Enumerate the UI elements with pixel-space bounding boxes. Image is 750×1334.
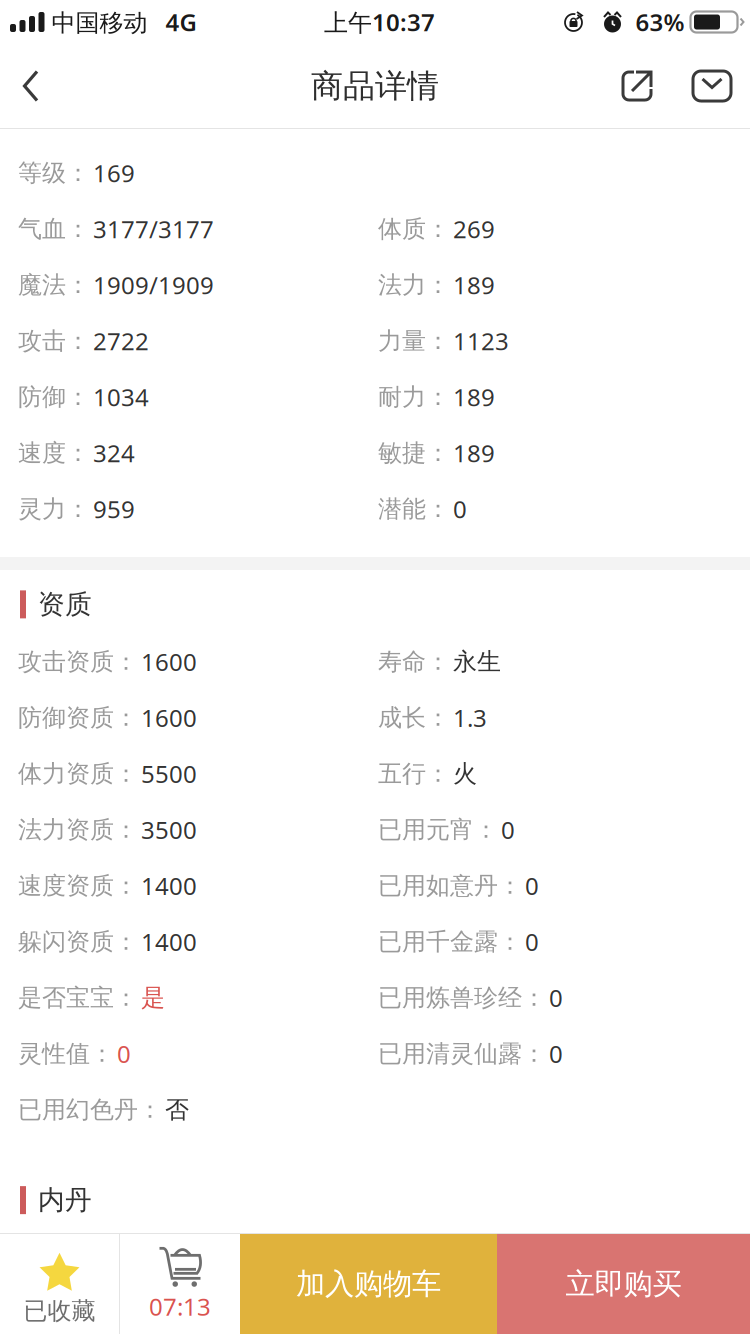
staticText: 0 bbox=[117, 1038, 131, 1070]
staticText: 63% bbox=[623, 6, 690, 38]
staticText: 189 bbox=[453, 269, 495, 301]
staticText: 已收藏 bbox=[23, 1296, 95, 1326]
button[interactable]: 已收藏 bbox=[0, 1234, 119, 1334]
staticText: 立即购买 bbox=[565, 1266, 681, 1302]
staticText: 防御资质： bbox=[18, 703, 138, 732]
staticText: 灵性值： bbox=[18, 1039, 114, 1068]
staticText: 寿命： bbox=[378, 647, 450, 676]
staticText: 189 bbox=[453, 381, 495, 413]
staticText: 0 bbox=[501, 814, 515, 846]
staticText: 已用清灵仙露： bbox=[378, 1039, 546, 1068]
staticText: 0 bbox=[525, 926, 539, 958]
button[interactable]: 立即购买 bbox=[497, 1234, 750, 1334]
staticText: 0 bbox=[453, 493, 467, 525]
staticText: 1400 bbox=[141, 870, 197, 902]
staticText: 力量： bbox=[378, 326, 450, 356]
staticText: 已用千金露： bbox=[378, 927, 522, 956]
staticText: 灵力： bbox=[18, 494, 90, 524]
staticText: 0 bbox=[549, 982, 563, 1014]
staticText: 五行： bbox=[378, 759, 450, 788]
staticText: 2722 bbox=[93, 325, 149, 357]
staticText: 法力资质： bbox=[18, 815, 138, 844]
staticText: 成长： bbox=[378, 703, 450, 732]
button[interactable]: Back bbox=[0, 44, 57, 128]
staticText: 潜能： bbox=[378, 494, 450, 524]
staticText: 3500 bbox=[141, 814, 197, 846]
staticText: 959 bbox=[93, 493, 135, 525]
staticText: 0 bbox=[549, 1038, 563, 1070]
staticText: 189 bbox=[453, 437, 495, 469]
staticText: 速度： bbox=[18, 438, 90, 468]
staticText: 永生 bbox=[453, 647, 501, 676]
staticText: 火 bbox=[453, 759, 477, 788]
button[interactable]: Share bbox=[609, 44, 692, 128]
staticText: 中国移动 4G bbox=[44, 6, 196, 38]
staticText: 资质 bbox=[38, 588, 92, 621]
staticText: 躲闪资质： bbox=[18, 927, 138, 956]
staticText: 324 bbox=[93, 437, 135, 469]
staticText: 已用幻色丹： bbox=[18, 1095, 162, 1124]
staticText: 加入购物车 bbox=[296, 1266, 441, 1302]
staticText: 上午10:37 bbox=[324, 6, 435, 38]
staticText: 1600 bbox=[141, 646, 197, 678]
button[interactable]: 加入购物车 bbox=[240, 1234, 497, 1334]
staticText: 1400 bbox=[141, 926, 197, 958]
staticText: 是 bbox=[141, 983, 165, 1012]
staticText: 体质： bbox=[378, 214, 450, 244]
staticText: 速度资质： bbox=[18, 871, 138, 900]
staticText: 商品详情 bbox=[311, 66, 439, 106]
staticText: 攻击资质： bbox=[18, 647, 138, 676]
staticText: 1.3 bbox=[453, 702, 487, 734]
staticText: 已用炼兽珍经： bbox=[378, 983, 546, 1012]
staticText: 269 bbox=[453, 213, 495, 245]
staticText: 3177/3177 bbox=[93, 213, 214, 245]
staticText: 是否宝宝： bbox=[18, 983, 138, 1012]
staticText: 5500 bbox=[141, 758, 197, 790]
staticText: 等级： bbox=[18, 158, 90, 188]
button[interactable]: Messages bbox=[692, 44, 750, 128]
staticText: 1034 bbox=[93, 381, 149, 413]
staticText: 07:13 bbox=[149, 1291, 211, 1322]
staticText: 敏捷： bbox=[378, 438, 450, 468]
staticText: 已用如意丹： bbox=[378, 871, 522, 900]
staticText: 内丹 bbox=[38, 1184, 92, 1217]
staticText: 魔法： bbox=[18, 270, 90, 300]
staticText: 0 bbox=[525, 870, 539, 902]
button[interactable]: 07:13 bbox=[120, 1234, 240, 1334]
staticText: 169 bbox=[93, 157, 135, 189]
staticText: 法力： bbox=[378, 270, 450, 300]
staticText: 体力资质： bbox=[18, 759, 138, 788]
staticText: 耐力： bbox=[378, 382, 450, 412]
staticText: 攻击： bbox=[18, 326, 90, 356]
staticText: 否 bbox=[165, 1095, 189, 1124]
staticText: 1123 bbox=[453, 325, 509, 357]
staticText: 1909/1909 bbox=[93, 269, 214, 301]
staticText: 防御： bbox=[18, 382, 90, 412]
staticText: 气血： bbox=[18, 214, 90, 244]
staticText: 1600 bbox=[141, 702, 197, 734]
staticText: 已用元宵： bbox=[378, 815, 498, 844]
